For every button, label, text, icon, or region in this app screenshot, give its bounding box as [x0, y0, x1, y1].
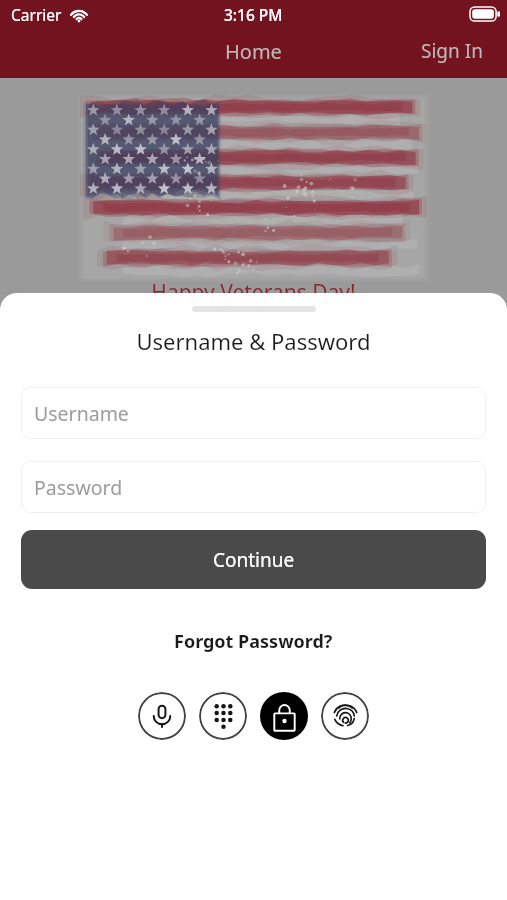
staticText: Sign In	[421, 38, 483, 64]
button[interactable]: Continue	[21, 530, 486, 589]
button[interactable]: Sign In	[407, 30, 507, 72]
button[interactable]: Forgot Password?	[166, 627, 341, 656]
staticText: Home	[225, 38, 282, 65]
button[interactable]: Keypad	[199, 692, 247, 740]
staticText: Password	[34, 474, 123, 501]
staticText: Happy Veterans Day!	[0, 278, 507, 307]
button[interactable]: Username	[21, 387, 486, 439]
staticText: Carrier	[11, 4, 62, 25]
button[interactable]: Lock	[260, 692, 308, 740]
button[interactable]: Fingerprint	[321, 692, 369, 740]
button[interactable]: Password	[21, 461, 486, 513]
staticText: Forgot Password?	[174, 629, 333, 654]
staticText: 3:16 PM	[224, 4, 283, 25]
staticText: Continue	[213, 547, 295, 573]
button[interactable]: Voice input	[138, 692, 186, 740]
button[interactable]: Home	[211, 30, 296, 73]
staticText: Username & Password	[0, 326, 507, 356]
staticText: Username	[34, 400, 129, 427]
